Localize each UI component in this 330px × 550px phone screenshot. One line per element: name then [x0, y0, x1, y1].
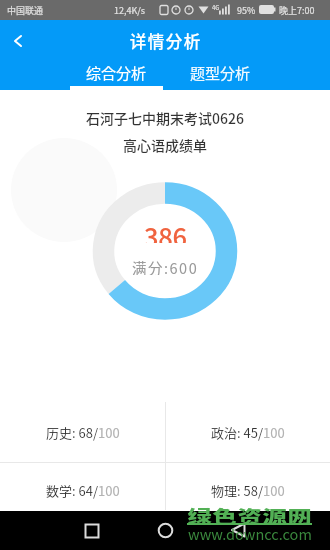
button[interactable]	[139, 511, 191, 550]
button[interactable]	[66, 511, 117, 550]
button[interactable]: 政治: 45/100	[165, 402, 330, 462]
staticText: 绿色资源网	[187, 503, 312, 523]
staticText: 历史: 68/100	[46, 423, 120, 442]
staticText: 386	[144, 217, 187, 243]
staticText: www.downcc.com	[188, 523, 312, 541]
button[interactable]: 物理: 58/100	[165, 462, 330, 518]
button[interactable]	[213, 511, 264, 550]
staticText: 政治: 45/100	[211, 423, 285, 442]
staticText: 石河子七中期末考试0626	[86, 108, 244, 126]
staticText: 满分:600	[132, 257, 199, 275]
staticText: 综合分析	[86, 62, 147, 84]
button[interactable]: 题型分析	[168, 56, 272, 90]
staticText: 高心语成绩单	[123, 135, 207, 153]
button[interactable]: 综合分析	[64, 56, 168, 90]
staticText: 95%	[237, 4, 256, 17]
staticText: 物理: 58/100	[211, 481, 285, 500]
staticText: 12,4K/s	[114, 4, 146, 17]
button[interactable]: 历史: 68/100	[0, 402, 165, 462]
staticText: 详情分析	[129, 29, 201, 53]
button[interactable]: 数学: 64/100	[0, 462, 165, 518]
staticText: 中国联通	[7, 4, 44, 17]
staticText: 题型分析	[190, 62, 251, 84]
staticText: 4G	[212, 3, 220, 12]
staticText: 晚上7:00	[279, 4, 315, 17]
staticText: 数学: 64/100	[46, 481, 120, 500]
button[interactable]	[2, 23, 34, 59]
